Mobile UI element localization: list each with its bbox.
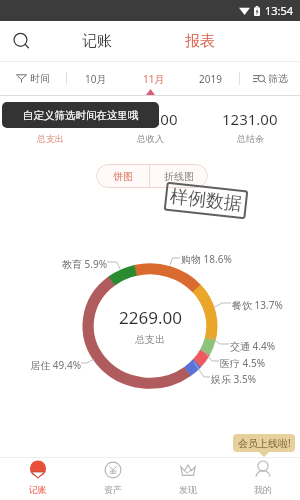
button[interactable]: 折线图 — [150, 164, 208, 188]
staticText: 折线图 — [164, 170, 194, 183]
staticText: 总结余 — [237, 133, 264, 144]
button[interactable]: 自定义筛选时间在这里哦 — [2, 102, 159, 128]
staticText: 样例数据 — [169, 185, 243, 216]
button[interactable]: 记账 — [0, 458, 75, 500]
staticText: 自定义筛选时间在这里哦 — [23, 109, 139, 122]
button[interactable]: 时间 — [0, 62, 66, 95]
staticText: 教育 5.9% — [49, 257, 107, 271]
staticText: 3500.00 — [122, 109, 178, 129]
staticText: 1231.00 — [222, 109, 278, 129]
staticText: 餐饮 13.7% — [232, 298, 283, 312]
staticText: 医疗 4.5% — [220, 356, 266, 370]
button[interactable]: 2019 — [182, 62, 239, 95]
staticText: 记账 — [29, 484, 47, 495]
staticText: 交通 4.4% — [230, 339, 276, 353]
button[interactable]: 2269.00 — [0, 100, 100, 150]
staticText: 报表 — [185, 32, 215, 51]
staticText: 饼图 — [113, 170, 133, 183]
button[interactable]: 发现 — [150, 458, 225, 500]
button[interactable]: 记账 — [74, 24, 120, 59]
button[interactable]: 资产 — [75, 458, 150, 500]
button[interactable]: 3500.00 — [100, 100, 200, 150]
staticText: 会员上线啦! — [238, 436, 291, 450]
staticText: 购物 18.6% — [181, 252, 232, 266]
staticText: 13:54 — [265, 3, 294, 18]
staticText: 资产 — [104, 484, 122, 495]
button[interactable]: 10月 — [67, 62, 125, 95]
staticText: 总支出 — [135, 333, 165, 346]
staticText: 2269.00 — [119, 306, 182, 329]
staticText: 2019 — [199, 72, 222, 86]
button[interactable]: 筛选 — [240, 62, 300, 95]
staticText: 筛选 — [268, 72, 288, 85]
staticText: 2269.00 — [22, 109, 78, 129]
staticText: 10月 — [85, 72, 107, 86]
staticText: 娱乐 3.5% — [211, 372, 257, 386]
button[interactable]: 我的 — [225, 458, 300, 500]
staticText: 11月 — [143, 72, 165, 86]
button[interactable]: 饼图 — [96, 164, 149, 188]
button[interactable]: Search — [9, 29, 34, 54]
staticText: 记账 — [82, 32, 112, 51]
button[interactable]: 11月 — [125, 62, 182, 95]
staticText: 我的 — [254, 484, 272, 495]
staticText: 总支出 — [37, 133, 64, 144]
button[interactable]: 1231.00 — [200, 100, 300, 150]
staticText: 时间 — [30, 72, 50, 85]
button[interactable]: 报表 — [177, 24, 223, 59]
staticText: 发现 — [179, 484, 197, 495]
staticText: 居住 49.4% — [23, 358, 81, 372]
button[interactable]: 会员上线啦! — [233, 434, 295, 452]
staticText: 总收入 — [137, 133, 164, 144]
